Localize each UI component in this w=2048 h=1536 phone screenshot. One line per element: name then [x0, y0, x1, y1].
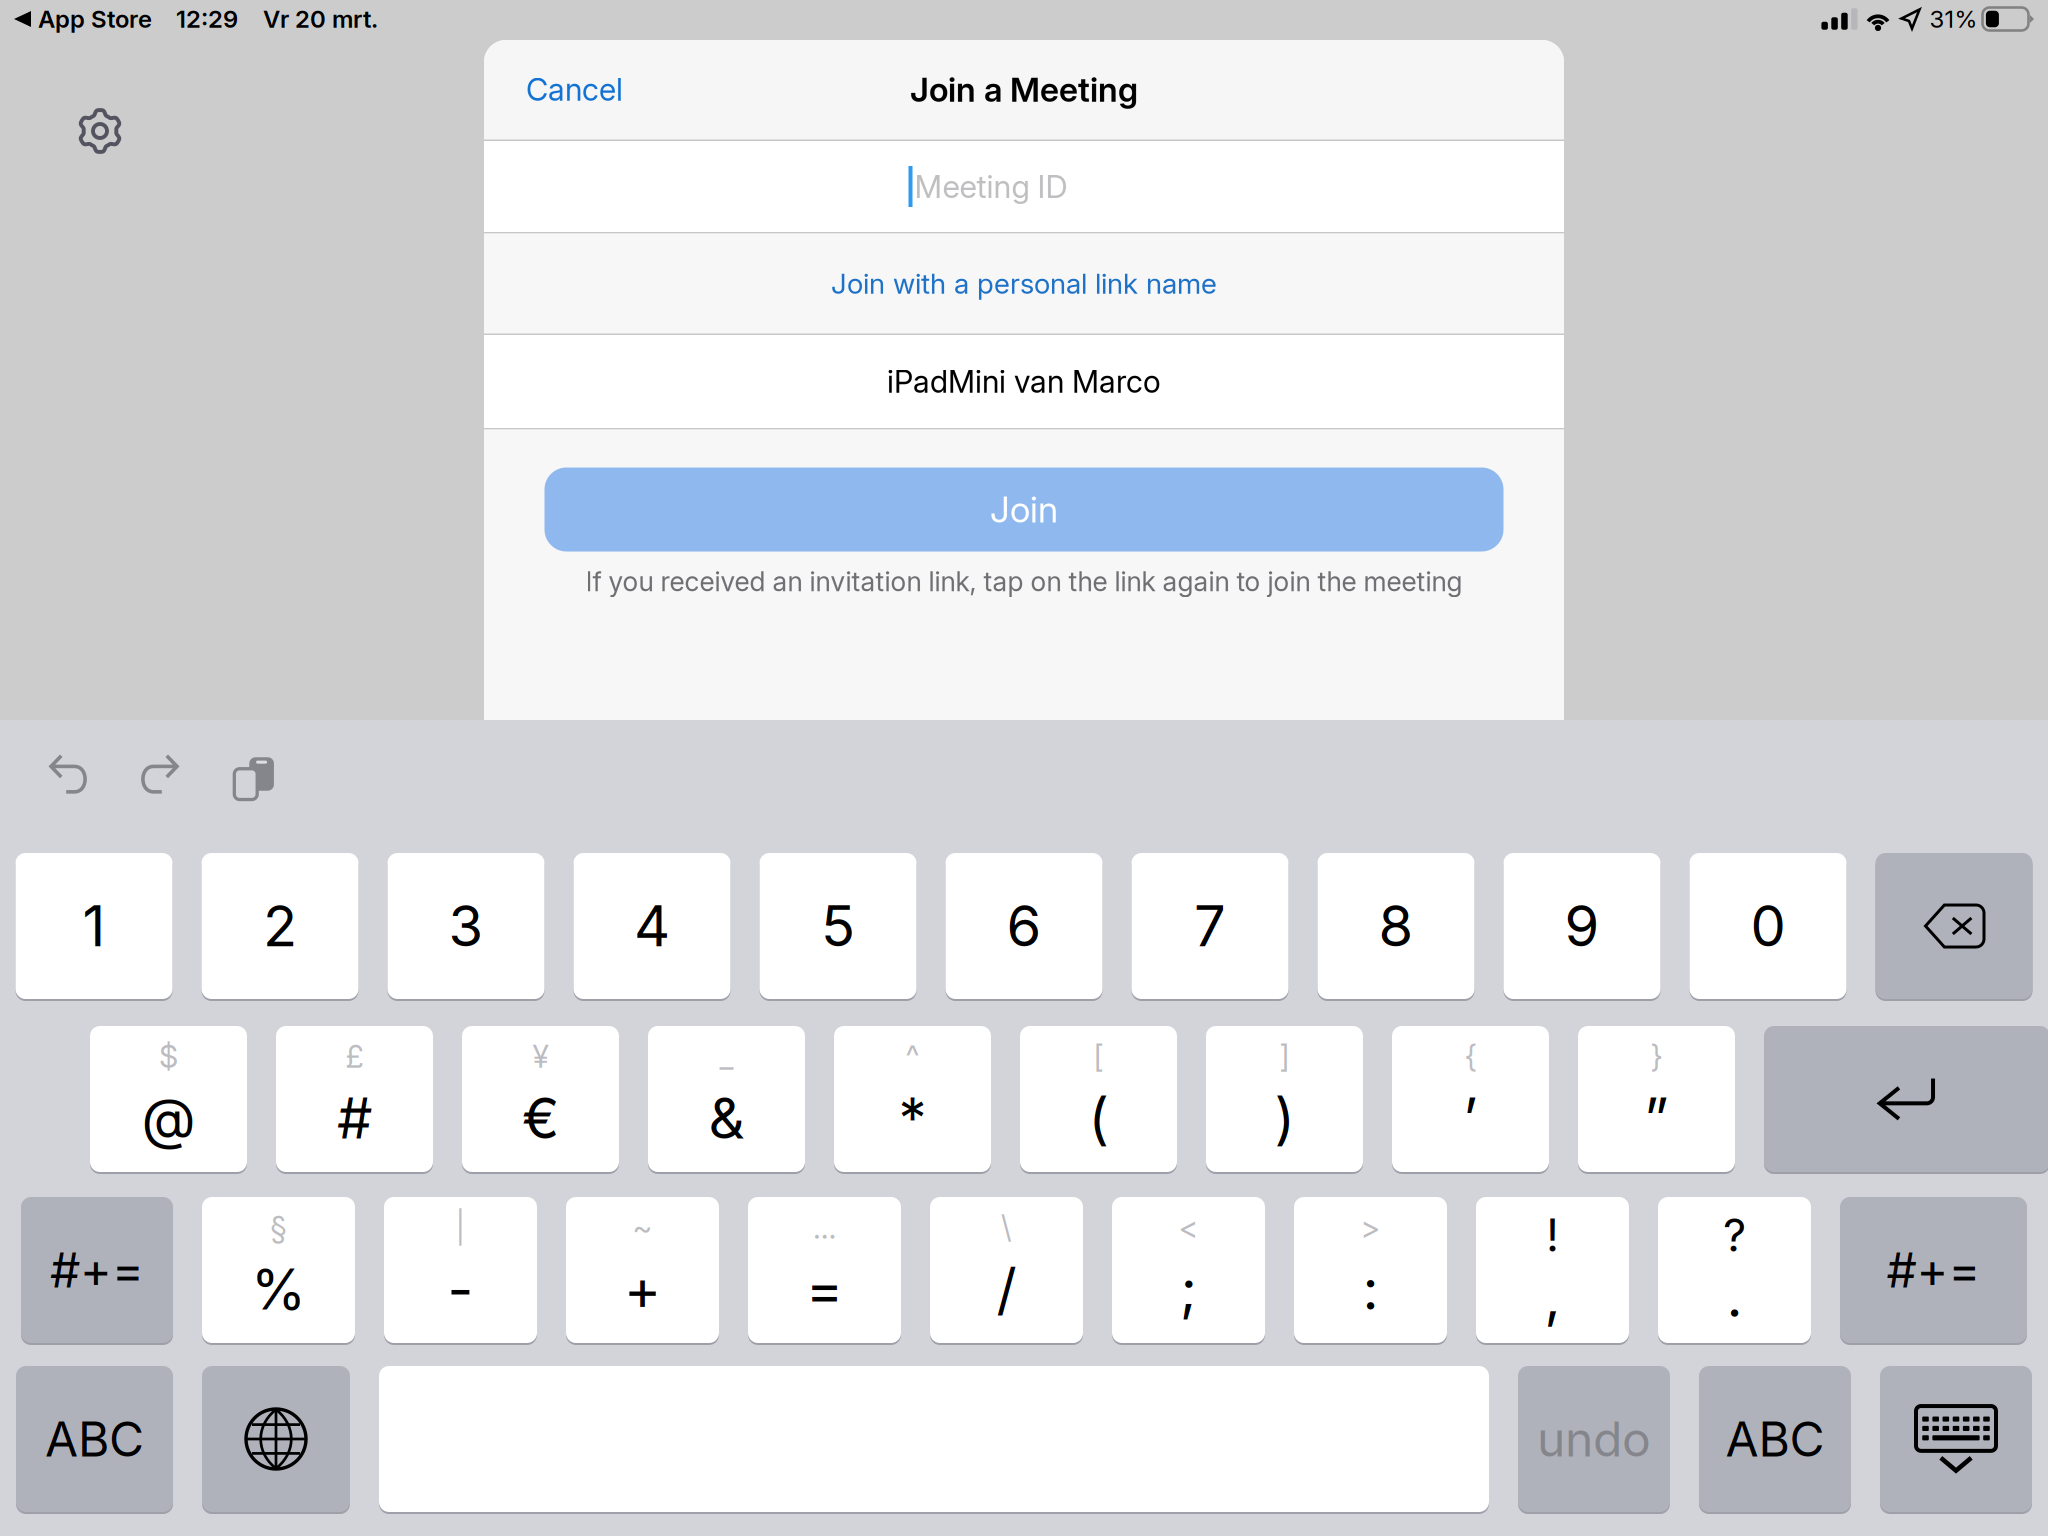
staticText: 6 — [1006, 892, 1041, 960]
staticText: < — [1178, 1209, 1198, 1246]
staticText: # — [337, 1084, 372, 1152]
staticText: 31% — [1929, 4, 1977, 33]
staticText: ] — [1279, 1038, 1289, 1075]
staticText: - — [447, 1255, 473, 1323]
staticText: & — [708, 1084, 744, 1152]
button[interactable]: Cancel — [484, 49, 649, 130]
button[interactable]: 9 — [1503, 853, 1660, 999]
staticText: Join — [990, 488, 1058, 531]
button[interactable]: 6 — [945, 853, 1102, 999]
button[interactable]: ] — [1206, 1026, 1363, 1172]
staticText: 3 — [448, 892, 483, 960]
staticText: Join with a personal link name — [831, 267, 1217, 300]
staticText: 5 — [821, 892, 855, 960]
staticText: undo — [1537, 1410, 1651, 1468]
staticText: 2 — [263, 892, 297, 960]
staticText: > — [1360, 1209, 1380, 1246]
staticText: ) — [1274, 1084, 1294, 1152]
staticText: ~ — [632, 1209, 652, 1246]
staticText: ( — [1088, 1084, 1108, 1152]
button[interactable]: _ — [648, 1026, 805, 1172]
button[interactable]: … — [748, 1197, 901, 1343]
staticText: [ — [1093, 1038, 1103, 1075]
button[interactable]: § — [202, 1197, 355, 1343]
staticText: . — [1726, 1262, 1742, 1330]
button[interactable]: 7 — [1131, 853, 1288, 999]
button[interactable]: $ — [90, 1026, 247, 1172]
button[interactable]: 3 — [387, 853, 544, 999]
staticText: 8 — [1378, 892, 1413, 960]
staticText: 7 — [1194, 892, 1226, 960]
staticText: = — [806, 1255, 843, 1323]
staticText: * — [898, 1084, 926, 1152]
button[interactable]: Return — [1764, 1026, 2048, 1172]
staticText: / — [996, 1255, 1016, 1323]
button[interactable]: 2 — [201, 853, 358, 999]
button[interactable]: Paste — [216, 749, 272, 799]
button[interactable]: } — [1578, 1026, 1735, 1172]
button[interactable]: Undo — [42, 749, 98, 799]
staticText: ^ — [905, 1038, 919, 1075]
button[interactable]: 8 — [1317, 853, 1474, 999]
staticText: £ — [345, 1038, 363, 1075]
staticText: 12:29 — [176, 4, 238, 33]
button[interactable]: Redo — [130, 749, 186, 799]
button[interactable]: Join — [544, 467, 1503, 551]
button[interactable]: Delete — [1875, 853, 2032, 999]
button[interactable]: | — [384, 1197, 537, 1343]
staticText: _ — [719, 1038, 733, 1075]
button[interactable]: > — [1294, 1197, 1447, 1343]
staticText: #+= — [1886, 1241, 1980, 1299]
button[interactable]: ¥ — [462, 1026, 619, 1172]
button[interactable]: < — [1112, 1197, 1265, 1343]
button[interactable]: ^ — [834, 1026, 991, 1172]
staticText: … — [813, 1209, 836, 1246]
staticText: @ — [141, 1084, 195, 1152]
button[interactable]: ? — [1658, 1197, 1811, 1343]
button[interactable]: Join with a personal link name — [484, 233, 1564, 333]
staticText: 9 — [1564, 892, 1599, 960]
staticText: € — [522, 1084, 559, 1152]
staticText: : — [1362, 1255, 1378, 1323]
staticText: } — [1650, 1038, 1662, 1075]
staticText: 4 — [634, 892, 670, 960]
button[interactable]: #+= — [21, 1197, 173, 1343]
staticText: ¥ — [532, 1038, 548, 1075]
staticText: Cancel — [526, 71, 623, 108]
staticText: iPadMini van Marco — [887, 363, 1161, 400]
staticText: ’ — [1463, 1084, 1478, 1152]
button[interactable]: 5 — [759, 853, 916, 999]
staticText: ABC — [1725, 1410, 1824, 1468]
button[interactable]: Back to App Store — [14, 4, 152, 33]
staticText: , — [1544, 1262, 1560, 1330]
button[interactable]: [ — [1020, 1026, 1177, 1172]
button[interactable]: ~ — [566, 1197, 719, 1343]
staticText: ? — [1723, 1208, 1746, 1263]
staticText: $ — [159, 1038, 178, 1075]
staticText: { — [1464, 1038, 1476, 1075]
staticText: % — [251, 1255, 306, 1323]
button[interactable]: ! — [1476, 1197, 1629, 1343]
button[interactable]: Settings — [64, 95, 136, 167]
button[interactable]: { — [1392, 1026, 1549, 1172]
button[interactable]: £ — [276, 1026, 433, 1172]
button[interactable]: #+= — [1840, 1197, 2027, 1343]
button[interactable]: 4 — [573, 853, 730, 999]
staticText: Join a Meeting — [910, 69, 1138, 110]
staticText: 1 — [82, 892, 105, 960]
staticText: § — [270, 1209, 287, 1246]
button[interactable]: ABC — [16, 1366, 173, 1512]
button[interactable]: Next keyboard — [202, 1366, 350, 1512]
staticText: ; — [1180, 1255, 1197, 1323]
button[interactable]: 1 — [15, 853, 172, 999]
button[interactable]: undo — [1518, 1366, 1670, 1512]
button[interactable]: 0 — [1689, 853, 1846, 999]
staticText: + — [624, 1255, 661, 1323]
button[interactable]: Hide keyboard — [1880, 1366, 2032, 1512]
button[interactable]: \ — [930, 1197, 1083, 1343]
staticText: 0 — [1750, 892, 1785, 960]
button[interactable]: ABC — [1699, 1366, 1851, 1512]
staticText: \ — [1001, 1209, 1012, 1246]
